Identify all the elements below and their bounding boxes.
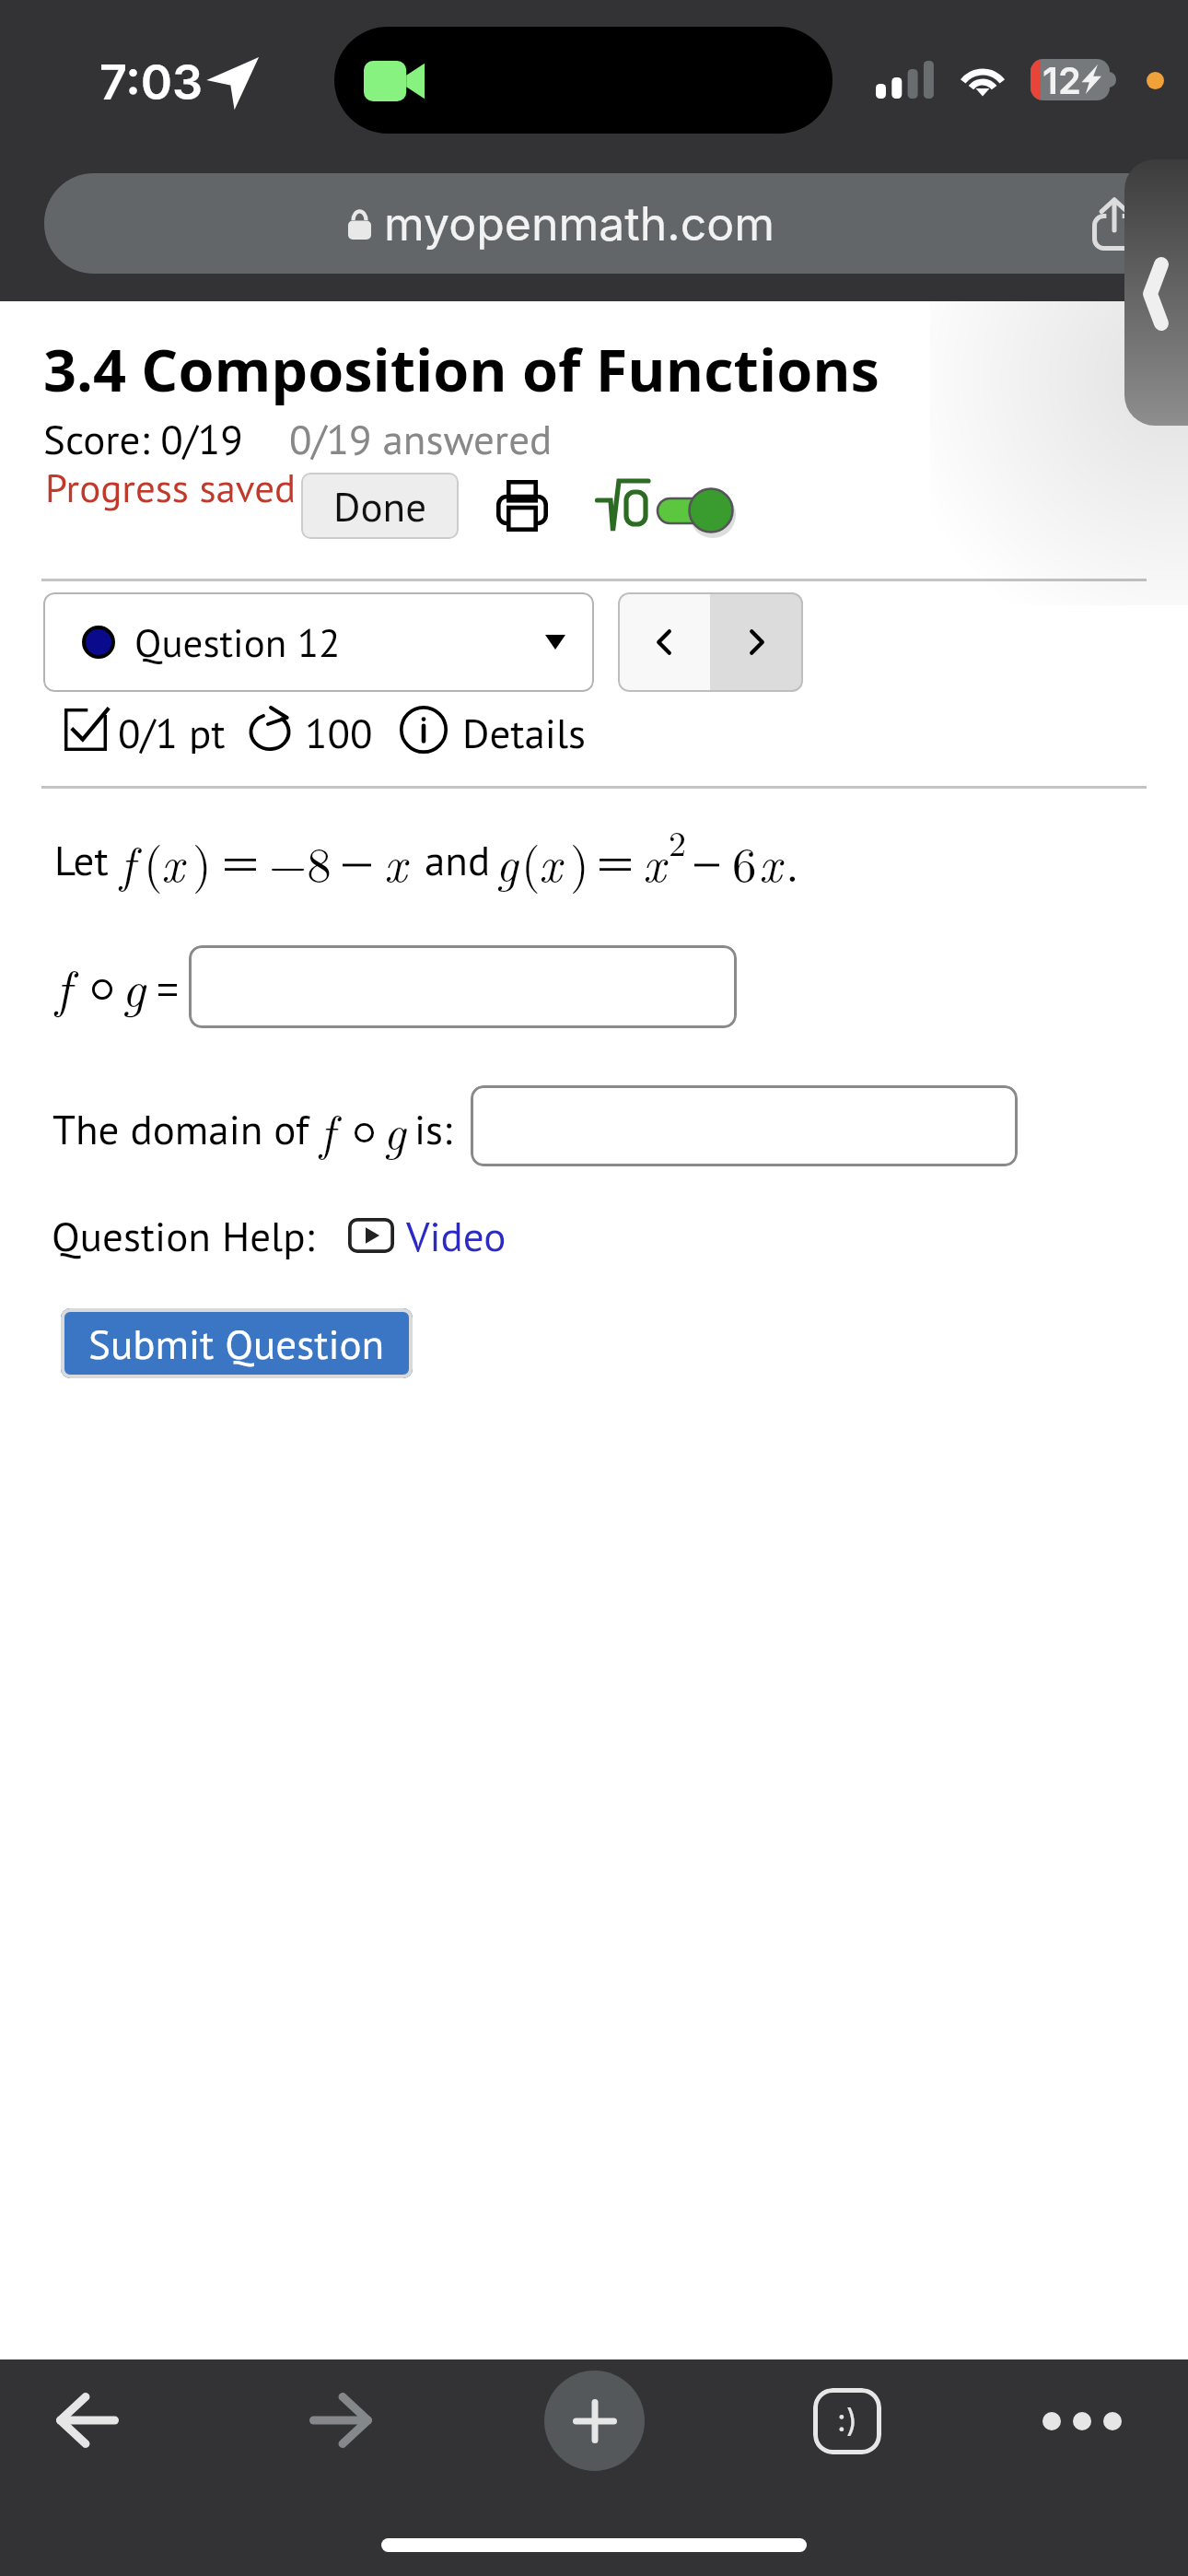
button[interactable]: Details	[397, 706, 449, 754]
staticText: f	[320, 1095, 335, 1164]
staticText: x	[759, 826, 782, 896]
staticText: −8	[269, 826, 332, 896]
staticText: g	[383, 1095, 406, 1164]
staticText: x	[539, 826, 562, 896]
button[interactable]: myopenmath.com	[44, 173, 1188, 274]
staticText: Submit Question	[88, 1317, 385, 1370]
button[interactable]: Video	[348, 1209, 507, 1262]
staticText: x	[384, 826, 407, 896]
staticText: and	[425, 833, 491, 886]
staticText: Question 12	[134, 616, 341, 668]
staticText: g	[495, 826, 518, 896]
other: Back gesture	[1124, 159, 1188, 426]
staticText: 3.4 Composition of Functions	[43, 330, 879, 409]
staticText: g	[122, 949, 146, 1022]
button[interactable]: Forward	[290, 2383, 391, 2457]
button[interactable]: New tab	[544, 2371, 645, 2471]
staticText: x	[161, 826, 184, 896]
button[interactable]: Question 12	[43, 592, 594, 692]
button[interactable]	[652, 481, 740, 540]
staticText: .	[786, 826, 799, 896]
staticText: 0/1 pt	[118, 706, 226, 754]
staticText: Question Help:	[52, 1209, 315, 1262]
staticText: :)	[837, 2401, 858, 2439]
button[interactable]: Submit Question	[61, 1308, 413, 1378]
staticText: (	[144, 826, 163, 896]
button[interactable]	[471, 1085, 1018, 1166]
staticText: 2	[669, 816, 687, 866]
button[interactable]: Previous question	[618, 592, 710, 692]
button[interactable]: Next question	[710, 592, 803, 692]
staticText: 12	[1042, 59, 1081, 100]
staticText: Video	[406, 1209, 507, 1262]
button[interactable]: Done	[301, 473, 459, 539]
staticText: Score: 0/19	[43, 412, 243, 465]
button[interactable]	[189, 945, 737, 1028]
button[interactable]: Print	[495, 479, 549, 533]
staticText: The domain of	[52, 1102, 309, 1155]
staticText: 0/19 answered	[289, 412, 553, 465]
staticText: f	[55, 949, 72, 1022]
staticText: 100	[305, 706, 373, 754]
staticText: Progress saved	[45, 462, 297, 513]
staticText: )	[192, 826, 212, 896]
staticText: 7:03	[99, 53, 204, 111]
staticText: is:	[414, 1102, 452, 1155]
staticText: Details	[462, 706, 587, 754]
staticText: Done	[333, 479, 427, 533]
staticText: )	[570, 826, 589, 896]
staticText: Let	[54, 833, 109, 886]
button[interactable]: Tabs	[794, 2380, 900, 2463]
button[interactable]: Back	[37, 2383, 138, 2457]
button[interactable]: Share	[1076, 185, 1153, 263]
button[interactable]: More	[1031, 2380, 1133, 2463]
staticText: myopenmath.com	[384, 196, 775, 252]
staticText: x	[643, 826, 666, 896]
staticText: 6	[732, 826, 757, 896]
staticText: (	[521, 826, 541, 896]
staticText: f	[120, 826, 135, 896]
